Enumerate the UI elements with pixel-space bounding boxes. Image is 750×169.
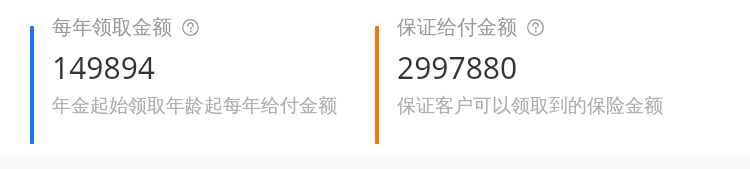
button[interactable]: 帮助说明 bbox=[526, 18, 545, 37]
staticText: 每年领取金额 bbox=[52, 15, 172, 40]
button[interactable]: 每年领取金额 bbox=[30, 13, 337, 144]
staticText: 149894 bbox=[52, 47, 155, 88]
staticText: 年金起始领取年龄起每年给付金额 bbox=[52, 94, 337, 118]
staticText: 保证给付金额 bbox=[397, 15, 517, 40]
staticText: 2997880 bbox=[397, 47, 518, 88]
button[interactable]: 保证给付金额 bbox=[375, 13, 663, 144]
button[interactable]: 帮助说明 bbox=[181, 18, 200, 37]
staticText: 保证客户可以领取到的保险金额 bbox=[397, 94, 663, 118]
